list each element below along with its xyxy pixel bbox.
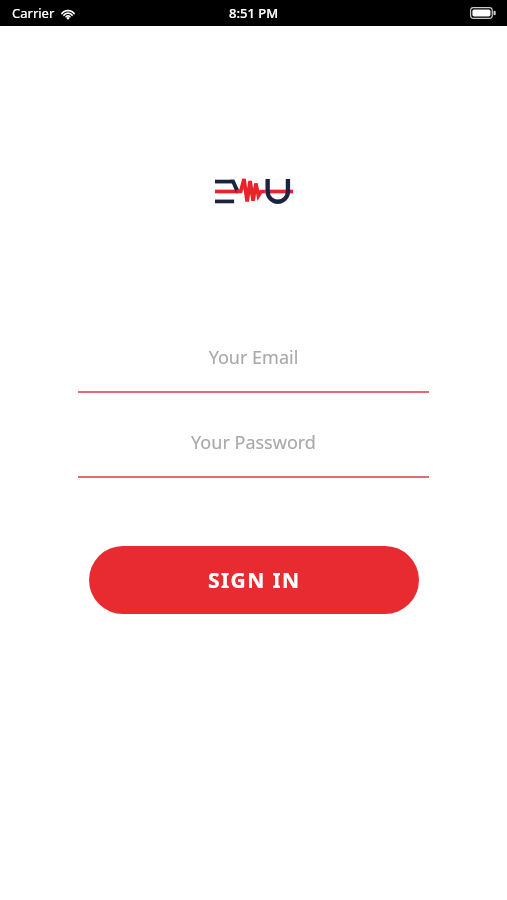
staticText: 8:51 PM [229,4,279,22]
button[interactable]: Your Password [78,430,429,478]
staticText: Carrier [12,4,55,22]
button[interactable]: Your Email [78,345,429,393]
staticText: SIGN IN [208,566,301,595]
button[interactable]: SIGN IN [89,546,419,614]
staticText: Your Email [78,345,429,370]
staticText: Your Password [78,430,429,455]
